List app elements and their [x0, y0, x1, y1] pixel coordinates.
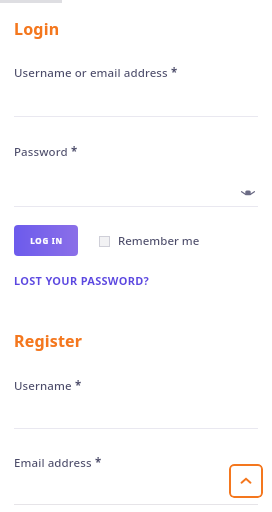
- staticText: Password: [14, 144, 68, 160]
- staticText: LOG IN: [30, 235, 63, 246]
- staticText: *: [171, 65, 178, 81]
- staticText: LOST YOUR PASSWORD?: [14, 273, 150, 288]
- staticText: Login: [14, 18, 60, 40]
- button[interactable]: Remember me: [99, 233, 200, 249]
- staticText: Register: [14, 330, 83, 352]
- button[interactable]: Show password: [238, 182, 258, 202]
- button[interactable]: LOST YOUR PASSWORD?: [14, 273, 150, 288]
- button[interactable]: LOG IN: [14, 225, 78, 256]
- staticText: *: [95, 455, 102, 471]
- staticText: Remember me: [118, 233, 200, 249]
- staticText: Username: [14, 378, 72, 394]
- staticText: *: [71, 144, 78, 160]
- staticText: Username or email address: [14, 65, 168, 81]
- staticText: Email address: [14, 455, 92, 471]
- staticText: *: [75, 378, 82, 394]
- button[interactable]: Scroll to top: [229, 464, 263, 498]
